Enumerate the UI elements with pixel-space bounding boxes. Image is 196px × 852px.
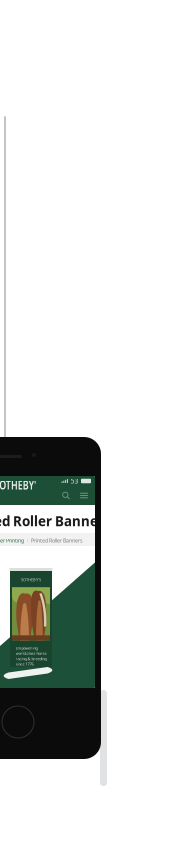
staticText: SOTHEBY'S <box>21 577 41 582</box>
button[interactable]: Search <box>57 487 75 503</box>
staticText: Empowering world-class horse racing & br… <box>15 645 46 666</box>
staticText: 53 <box>70 477 78 485</box>
staticText: / <box>26 537 28 544</box>
button[interactable]: Banner Printing <box>0 537 24 544</box>
staticText: Printed Roller Banners <box>31 537 83 544</box>
button[interactable]: Menu <box>75 489 93 502</box>
staticText: Banner Printing <box>0 537 24 544</box>
staticText: SOTHEBY'S <box>0 477 51 509</box>
staticText: Printed Roller Banners <box>0 512 111 530</box>
button[interactable]: Sotheby's International Realty home <box>0 477 2 514</box>
